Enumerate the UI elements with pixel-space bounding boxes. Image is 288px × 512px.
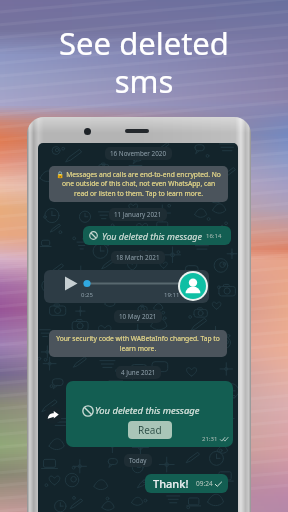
button[interactable]: 0:25 bbox=[44, 270, 209, 303]
staticText: See deleted sms bbox=[59, 22, 229, 102]
staticText: 🔒 Messages and calls are end-to-end encr… bbox=[55, 170, 222, 198]
staticText: 10 May 2021 bbox=[119, 312, 157, 321]
button[interactable]: You deleted this message bbox=[83, 226, 231, 245]
staticText: 16:14 bbox=[206, 232, 222, 240]
button[interactable]: Read bbox=[128, 421, 172, 439]
staticText: 18 March 2021 bbox=[116, 253, 160, 262]
staticText: Thank! bbox=[153, 476, 189, 491]
button[interactable]: Forward bbox=[44, 406, 62, 424]
button[interactable]: You deleted this message bbox=[66, 381, 233, 447]
staticText: Today bbox=[129, 456, 147, 465]
staticText: Read bbox=[138, 423, 162, 437]
staticText: You deleted this message bbox=[95, 404, 200, 417]
button[interactable]: 🔒 Messages and calls are end-to-end encr… bbox=[49, 166, 228, 202]
staticText: 16 November 2020 bbox=[110, 149, 167, 158]
staticText: Your security code with WABetaInfo chang… bbox=[55, 334, 221, 353]
staticText: 09:24 bbox=[196, 479, 213, 488]
staticText: 21:31 bbox=[202, 435, 218, 443]
staticText: 0:25 bbox=[81, 291, 93, 299]
staticText: 4 June 2021 bbox=[121, 368, 156, 377]
button[interactable]: Your security code with WABetaInfo chang… bbox=[49, 330, 227, 357]
staticText: You deleted this message bbox=[102, 230, 202, 242]
staticText: 19:11 bbox=[164, 291, 180, 299]
button[interactable]: Thank! bbox=[145, 474, 228, 493]
staticText: 11 January 2021 bbox=[114, 210, 162, 219]
